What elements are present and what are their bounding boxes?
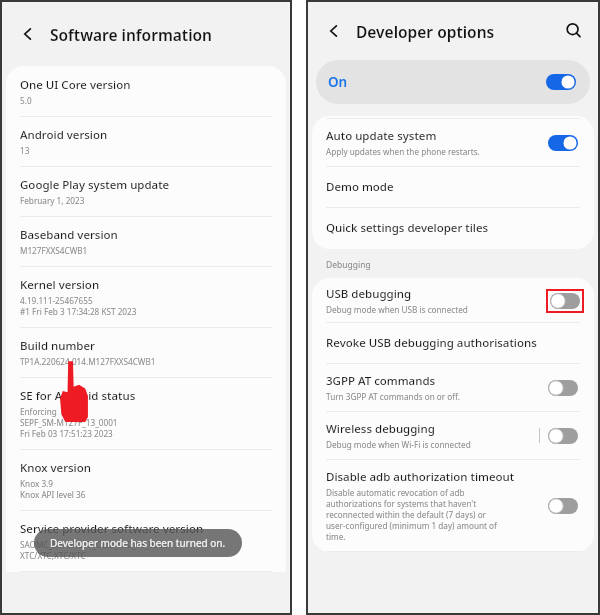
staticText: Fri Feb 03 17:51:23 2023 (20, 428, 113, 439)
button[interactable]: Toggle off (548, 380, 578, 396)
staticText: Google Play system update (20, 177, 170, 193)
button[interactable]: Disable adb authorization timeout (312, 460, 594, 551)
staticText: Knox 3.9 (20, 478, 53, 489)
button[interactable]: Kernel version (6, 267, 286, 327)
staticText: Disable adb authorization timeout (326, 469, 515, 485)
staticText: Developer options (356, 21, 562, 42)
button[interactable]: Toggle off (550, 293, 580, 309)
button[interactable]: Revoke USB debugging authorisations (312, 323, 594, 363)
staticText: Demo mode (326, 179, 394, 195)
button[interactable]: Knox version (6, 450, 286, 510)
button[interactable]: Android version (6, 117, 286, 166)
staticText: Debug mode when Wi-Fi is connected (326, 439, 471, 450)
staticText: Turn 3GPP AT commands on or off. (326, 391, 460, 402)
staticText: Baseband version (20, 227, 118, 243)
button[interactable]: Auto update system (312, 119, 594, 166)
staticText: Apply updates when the phone restarts. (326, 146, 480, 157)
staticText: 3GPP AT commands (326, 373, 436, 389)
staticText: SEPF_SM-M127F_13_0001 (20, 417, 118, 428)
staticText: Knox API level 36 (20, 489, 86, 500)
staticText: One UI Core version (20, 77, 131, 93)
staticText: 5.0 (20, 95, 32, 106)
staticText: SE for Android status (20, 388, 136, 404)
button[interactable]: USB debugging (312, 278, 594, 322)
staticText: February 1, 2023 (20, 195, 85, 206)
button[interactable]: 3GPP AT commands (312, 364, 594, 411)
button[interactable]: Baseband version (6, 217, 286, 266)
staticText: Revoke USB debugging authorisations (326, 335, 537, 351)
staticText: reconnected within the default (7 days) … (326, 509, 486, 520)
button[interactable]: On (316, 60, 590, 104)
button[interactable]: Service provider software version (6, 511, 286, 571)
button[interactable]: Build number (6, 328, 286, 377)
staticText: M127FXXS4CWB1 (20, 245, 88, 256)
staticText: time. (326, 531, 346, 542)
staticText: Quick settings developer tiles (326, 220, 489, 236)
staticText: Build number (20, 338, 95, 354)
button[interactable]: Toggle off (548, 428, 578, 444)
staticText: Service provider software version (20, 521, 204, 537)
button[interactable]: SE for Android status (6, 378, 286, 449)
button[interactable]: Toggle off (548, 498, 578, 514)
staticText: Enforcing (20, 406, 57, 417)
staticText: SAOMC_SM-M127F_OLM_XTC_13_0002 (20, 539, 168, 550)
button[interactable]: Google Play system update (6, 167, 286, 216)
staticText: Debugging (326, 259, 371, 271)
button[interactable]: Search (562, 19, 586, 43)
button[interactable]: Demo mode (312, 167, 594, 207)
staticText: Developer mode has been turned on. (50, 536, 226, 550)
staticText: On (328, 73, 546, 91)
staticText: Disable automatic revocation of adb (326, 487, 465, 498)
staticText: Auto update system (326, 128, 437, 144)
staticText: Debug mode when USB is connected (326, 304, 468, 315)
button[interactable]: Toggle on (548, 135, 578, 151)
staticText: 4.19.111-25467655 (20, 295, 93, 306)
staticText: Kernel version (20, 277, 100, 293)
staticText: Android version (20, 127, 108, 143)
button[interactable]: One UI Core version (6, 66, 286, 116)
button[interactable]: Back (320, 17, 348, 45)
staticText: TP1A.220624.014.M127FXXS4CWB1 (20, 356, 156, 367)
staticText: XTC/XTC,XTC/XTC (20, 550, 86, 561)
staticText: USB debugging (326, 286, 412, 302)
staticText: user-configured (minimum 1 day) amount o… (326, 520, 497, 531)
staticText: Wireless debugging (326, 421, 435, 437)
staticText: authorizations for systems that haven't (326, 498, 477, 509)
staticText: #1 Fri Feb 3 17:34:28 KST 2023 (20, 306, 137, 317)
button[interactable]: Toggle on (546, 74, 576, 90)
staticText: 13 (20, 145, 30, 156)
staticText: Knox version (20, 460, 91, 476)
button[interactable]: Back (14, 20, 42, 48)
button[interactable]: Wireless debugging (312, 412, 594, 459)
staticText: Software information (50, 24, 212, 45)
button[interactable]: Quick settings developer tiles (312, 208, 594, 249)
